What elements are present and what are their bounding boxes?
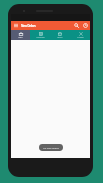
button[interactable]: NEW bbox=[11, 30, 30, 40]
button[interactable]: No new orders bbox=[39, 144, 63, 151]
button[interactable]: Search bbox=[72, 21, 81, 30]
staticText: ACCEPTED bbox=[36, 36, 45, 39]
staticText: New Orders bbox=[21, 24, 36, 28]
button[interactable]: READY bbox=[50, 30, 70, 40]
staticText: READY bbox=[57, 36, 63, 39]
button[interactable]: CLOSED bbox=[70, 30, 90, 40]
staticText: CLOSED bbox=[77, 36, 84, 39]
button[interactable]: ACCEPTED bbox=[30, 30, 50, 40]
staticText: NEW bbox=[18, 36, 23, 39]
button[interactable]: Menu bbox=[11, 21, 20, 30]
staticText: No new orders bbox=[43, 146, 59, 149]
button[interactable]: Order history bbox=[81, 21, 90, 30]
